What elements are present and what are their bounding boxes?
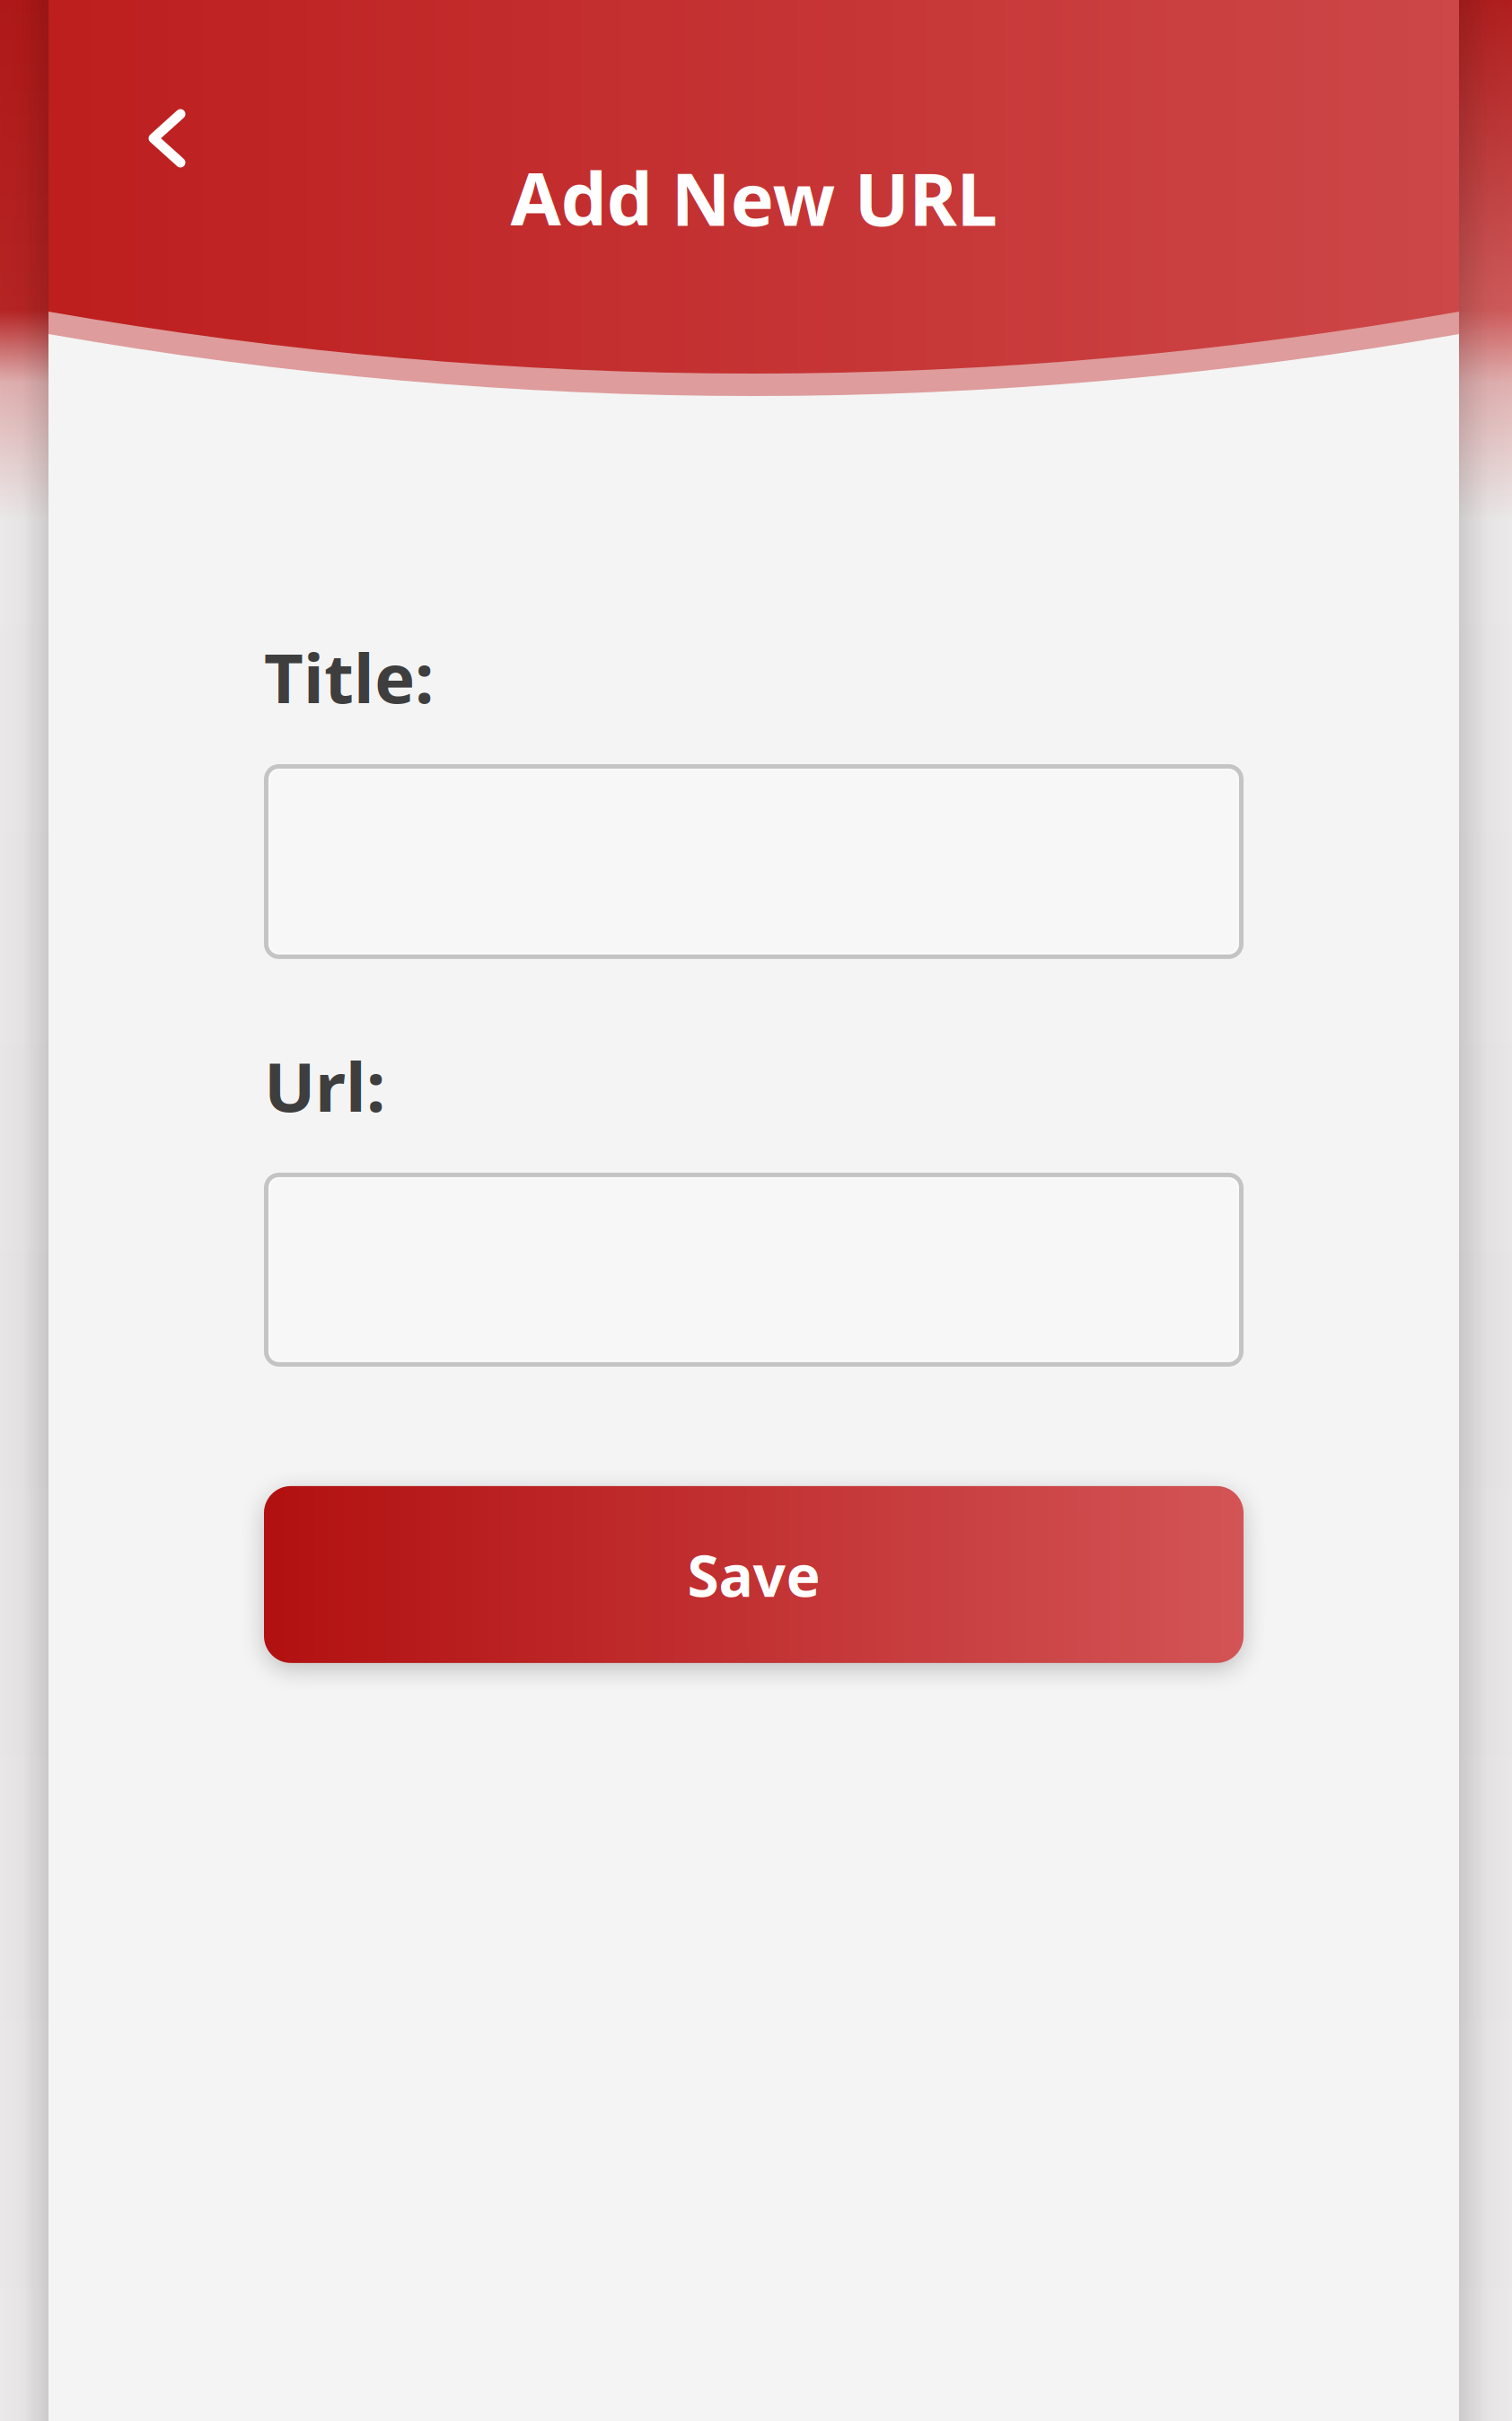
- staticText: Title:: [264, 631, 434, 722]
- button[interactable]: Title: [264, 764, 1244, 959]
- staticText: Url:: [264, 1040, 385, 1130]
- staticText: Save: [687, 1536, 820, 1613]
- staticText: Add New URL: [510, 149, 997, 246]
- button[interactable]: Back: [48, 0, 237, 219]
- button[interactable]: Url: [264, 1173, 1244, 1367]
- button[interactable]: Save: [264, 1486, 1244, 1663]
